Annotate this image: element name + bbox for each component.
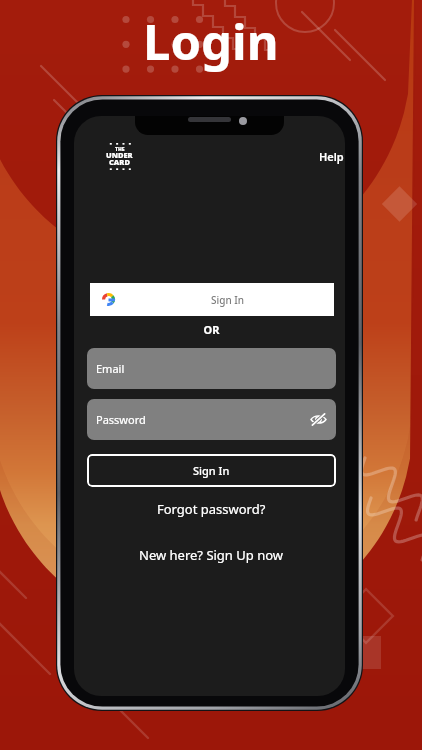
staticText: Sign In xyxy=(211,293,245,307)
button[interactable]: Password xyxy=(87,399,336,440)
button[interactable]: Sign In xyxy=(87,454,336,487)
staticText: CARD xyxy=(109,157,130,167)
staticText: Email xyxy=(96,361,125,376)
button[interactable]: Toggle password visibility xyxy=(310,412,327,427)
button[interactable]: New here? Sign Up now xyxy=(139,546,284,564)
button[interactable]: Help xyxy=(317,147,345,166)
staticText: Password xyxy=(96,412,146,427)
staticText: OR xyxy=(87,322,336,337)
button[interactable]: Sign In xyxy=(90,283,334,316)
staticText: Help xyxy=(319,149,344,164)
staticText: UNDER xyxy=(106,150,133,160)
button[interactable]: Forgot password? xyxy=(157,500,266,518)
button[interactable]: Email xyxy=(87,348,336,389)
staticText: Sign In xyxy=(193,463,230,478)
staticText: Login xyxy=(143,8,279,75)
staticText: THE xyxy=(115,146,125,153)
